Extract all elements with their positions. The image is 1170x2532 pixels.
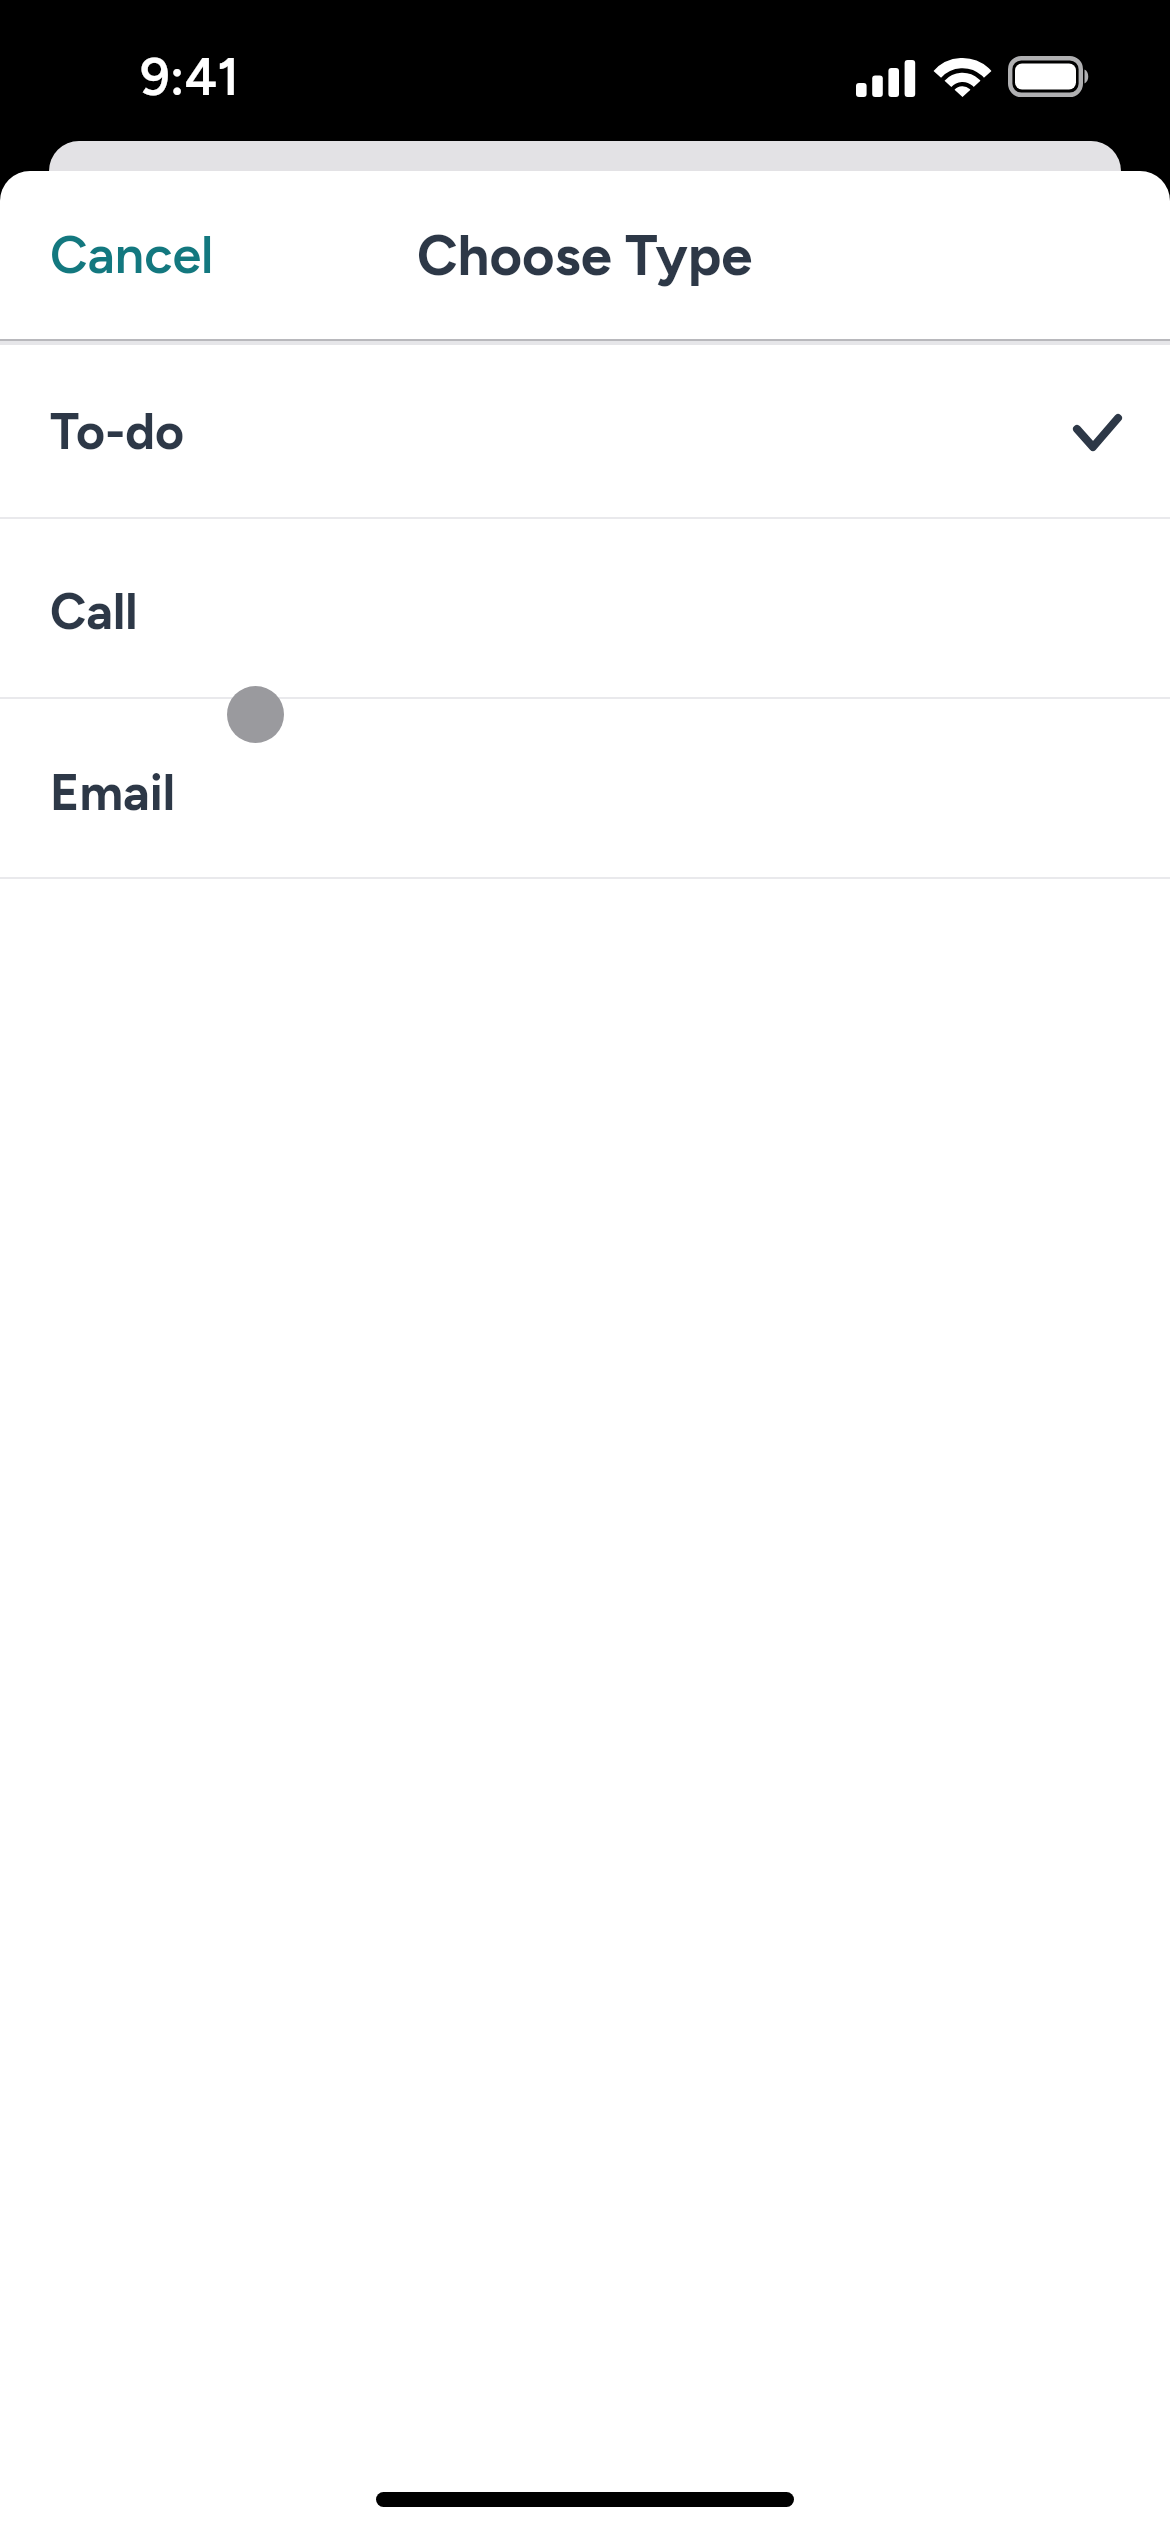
staticText: To-do [50,401,185,461]
button[interactable]: Email [0,699,1170,877]
staticText: Email [50,762,176,822]
staticText: Choose Type [417,222,753,289]
staticText: Call [50,581,138,641]
button[interactable]: Call [0,519,1170,697]
button[interactable]: To-do [0,345,1170,517]
staticText: 9:41 [140,46,239,108]
button[interactable]: Cancel [0,195,260,315]
other: Selected [1073,414,1122,448]
staticText: Cancel [50,224,214,286]
